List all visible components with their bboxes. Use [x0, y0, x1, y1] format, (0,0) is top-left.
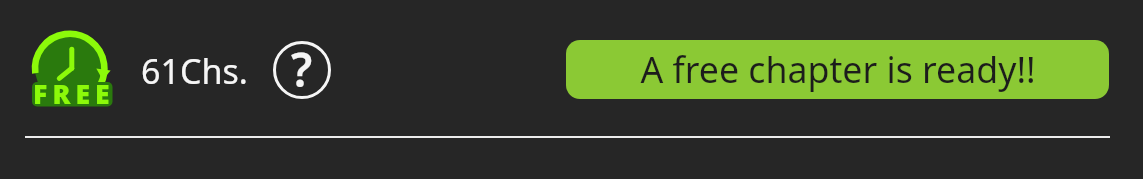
staticText: 61Chs. [141, 48, 248, 94]
button[interactable]: A free chapter is ready!! [566, 40, 1109, 99]
button[interactable]: Help [273, 41, 331, 99]
staticText: ? [291, 38, 313, 96]
button[interactable]: Free chapter timer [26, 26, 116, 110]
staticText: FREE [33, 76, 115, 112]
staticText: A free chapter is ready!! [640, 45, 1036, 94]
